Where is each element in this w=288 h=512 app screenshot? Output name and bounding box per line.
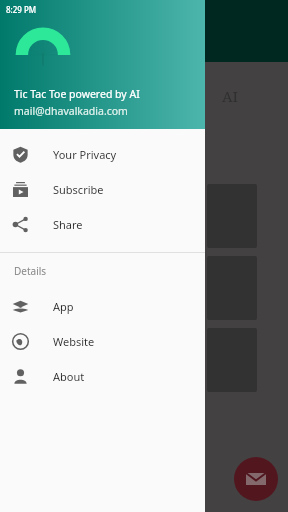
staticText: Tic Tac Toe powered by AI [14, 87, 140, 101]
staticText: 8:29 PM [6, 4, 37, 15]
button[interactable]: About [0, 359, 205, 394]
staticText: Subscribe [53, 182, 104, 197]
staticText: App [53, 299, 74, 314]
button[interactable]: Subscribe [0, 172, 205, 207]
staticText: AI [222, 86, 239, 106]
button[interactable]: Share [0, 207, 205, 242]
staticText: Your Privacy [53, 147, 117, 162]
staticText: Website [53, 334, 95, 349]
staticText: Share [53, 217, 83, 232]
button[interactable]: Send email [234, 457, 278, 501]
button[interactable]: App [0, 289, 205, 324]
button[interactable]: Website [0, 324, 205, 359]
staticText: mail@dhavalkadia.com [14, 104, 128, 118]
button[interactable]: Your Privacy [0, 137, 205, 172]
staticText: About [53, 369, 85, 384]
staticText: Details [14, 264, 47, 278]
